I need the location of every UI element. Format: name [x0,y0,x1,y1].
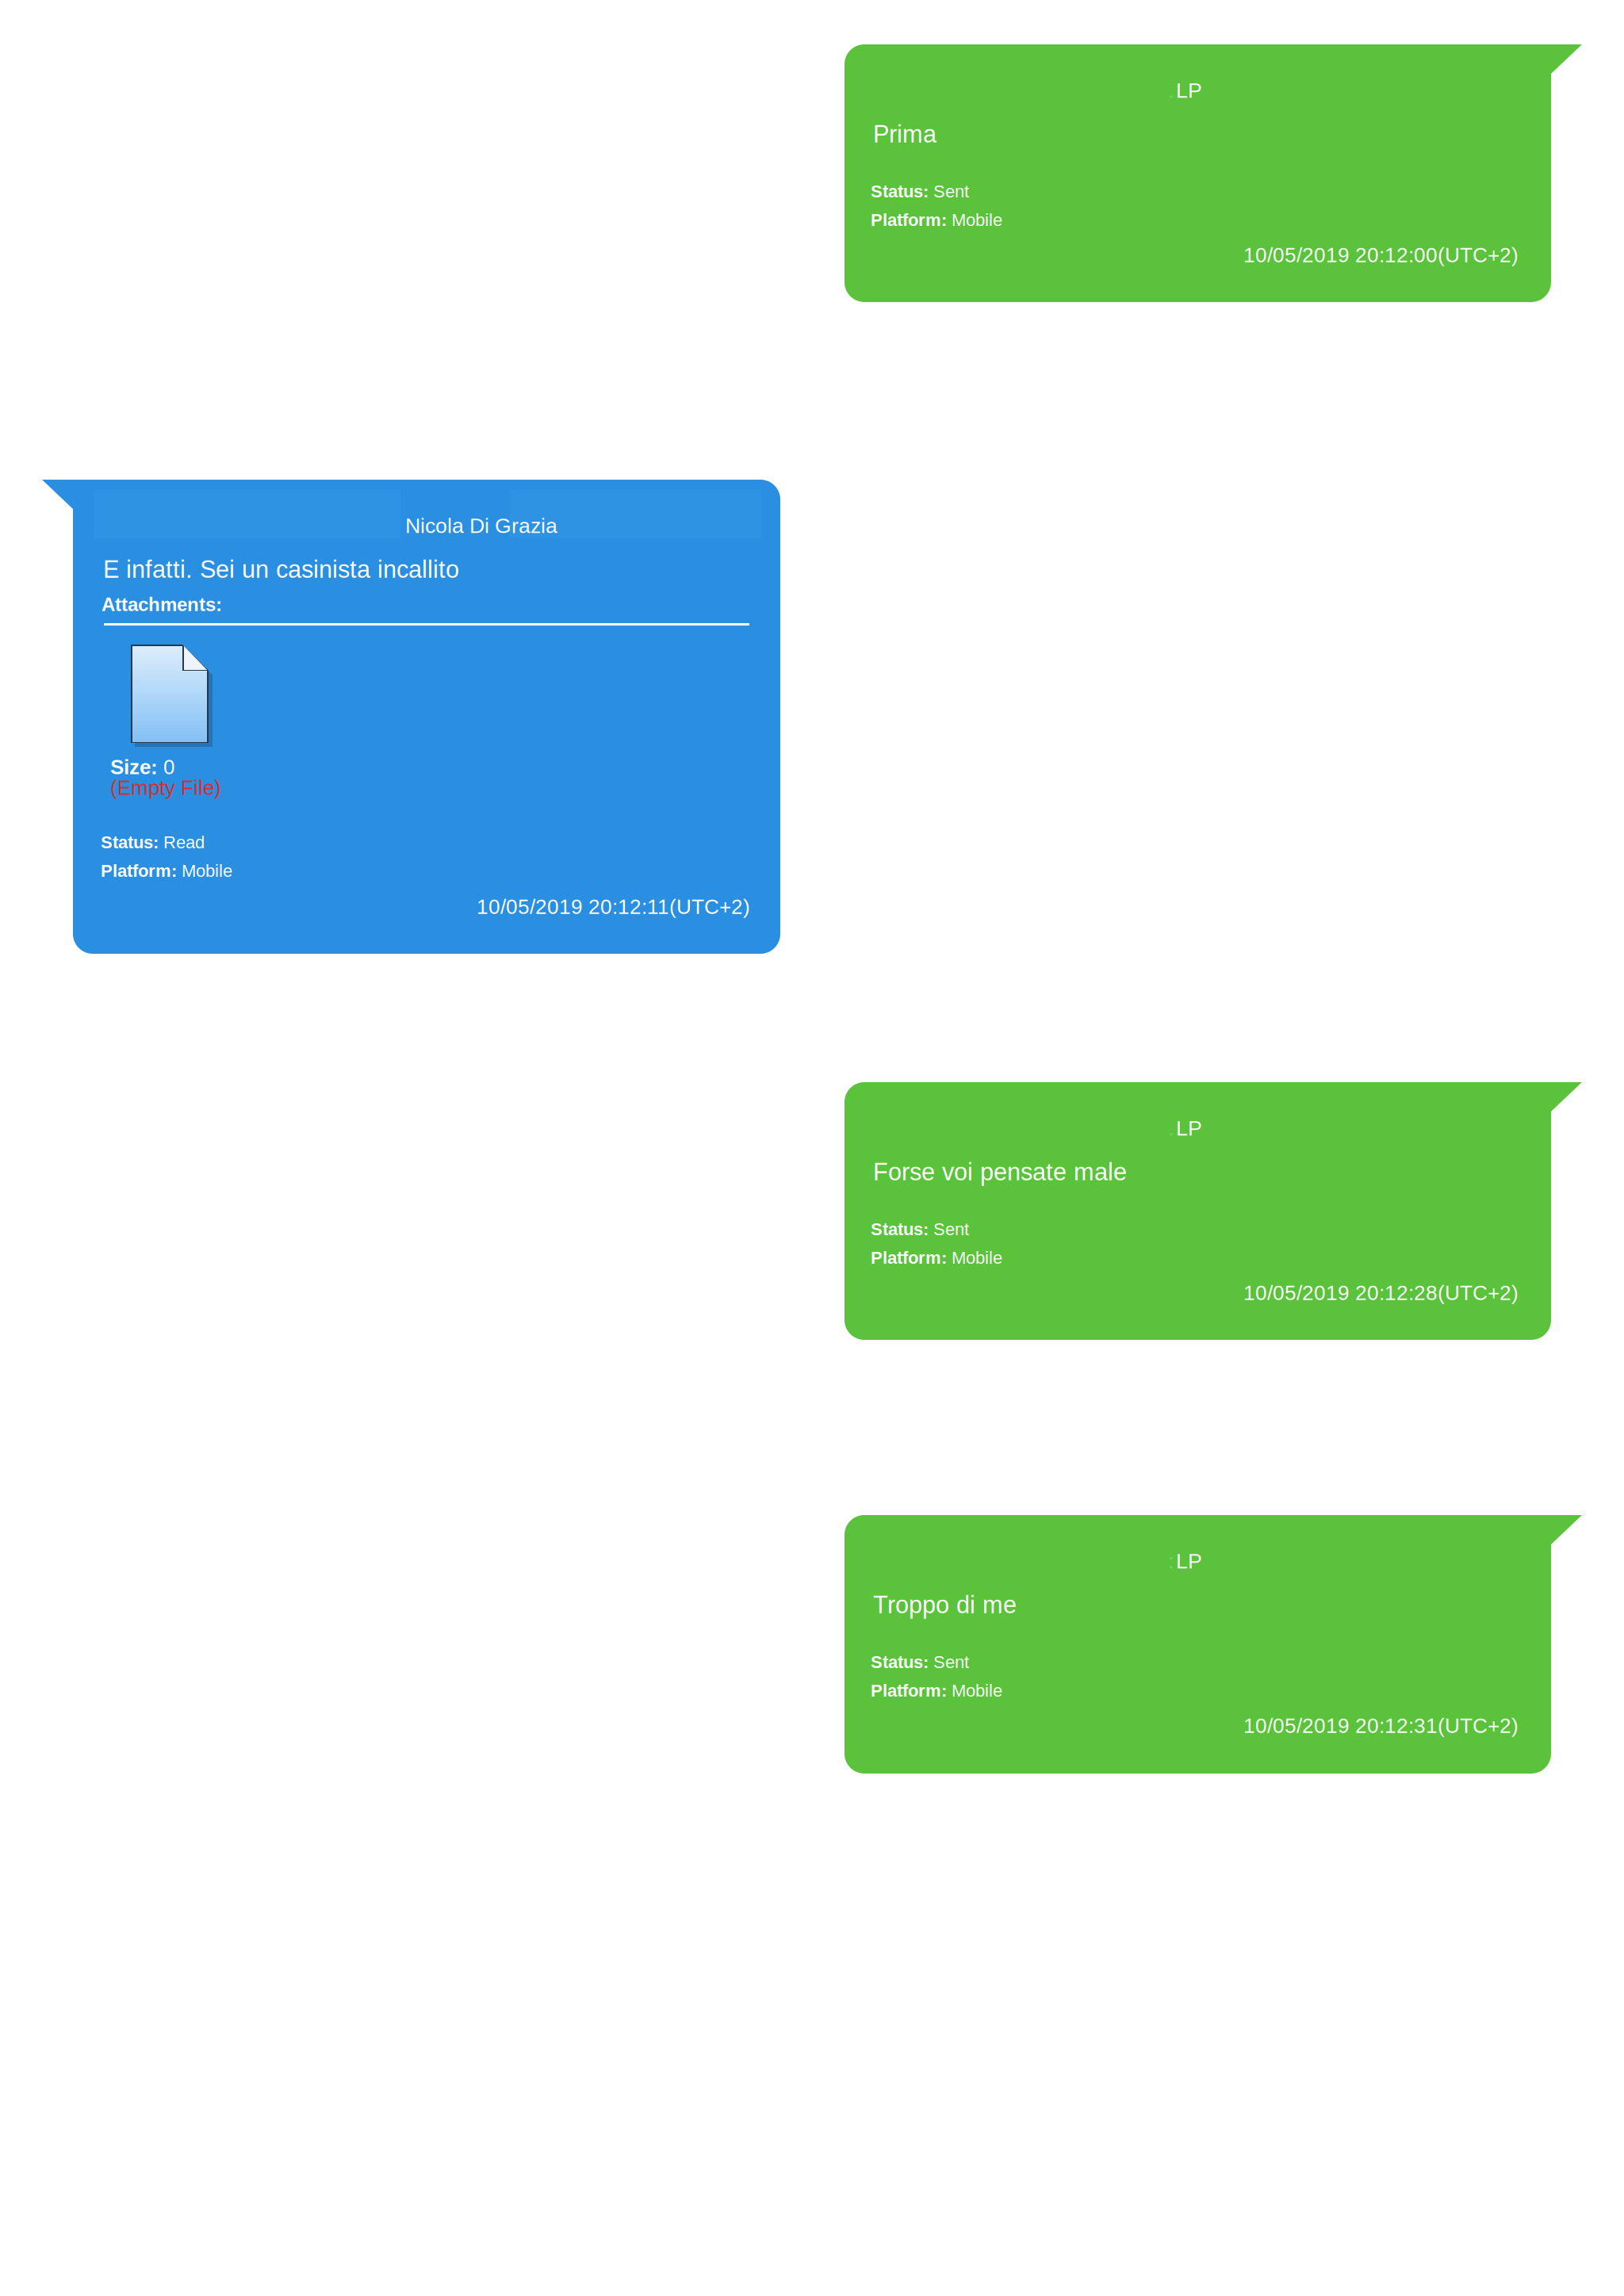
button[interactable]: Received message from Nicola Di Grazia: … [42,480,780,954]
button[interactable]: Sent message: Prima, 10/05/2019 20:12:00… [845,44,1582,302]
staticText: Status: [871,182,929,201]
staticText: 10/05/2019 20:12:31(UTC+2) [1243,1714,1519,1737]
staticText: Mobile [177,861,232,881]
staticText: 10/05/2019 20:12:00(UTC+2) [1243,243,1519,267]
staticText: Forse voi pensate male [873,1158,1127,1186]
staticText: : [1168,1549,1174,1573]
staticText: Attachments: [101,594,222,615]
staticText: Prima [873,121,936,148]
staticText: Sent [929,1219,969,1239]
staticText: . [1168,78,1174,102]
staticText: LP [1176,1116,1202,1140]
staticText: Platform: [101,861,177,881]
staticText: Mobile [947,1248,1002,1267]
staticText: Platform: [871,1681,947,1700]
staticText: Troppo di me [873,1591,1017,1618]
staticText: Mobile [947,210,1002,230]
staticText: LP [1176,1549,1202,1573]
staticText: Size: [110,756,158,779]
staticText: (Empty File) [110,776,221,799]
staticText: 0 [158,756,174,779]
staticText: . [1168,1116,1174,1140]
staticText: Sent [929,182,969,201]
staticText: Platform: [871,210,947,230]
staticText: Status: [101,832,159,852]
staticText: Nicola Di Grazia [405,514,557,537]
staticText: LP [1176,78,1202,102]
staticText: 10/05/2019 20:12:11(UTC+2) [477,895,750,918]
button[interactable]: Sent message: Troppo di me, 10/05/2019 2… [845,1515,1582,1774]
staticText: Read [159,832,205,852]
staticText: Mobile [947,1681,1002,1700]
staticText: Sent [929,1652,969,1672]
staticText: Platform: [871,1248,947,1267]
staticText: E infatti. Sei un casinista incallito [103,556,459,583]
staticText: 10/05/2019 20:12:28(UTC+2) [1243,1281,1519,1304]
staticText: Status: [871,1652,929,1672]
button[interactable]: Sent message: Forse voi pensate male, 10… [845,1082,1582,1340]
staticText: Status: [871,1219,929,1239]
